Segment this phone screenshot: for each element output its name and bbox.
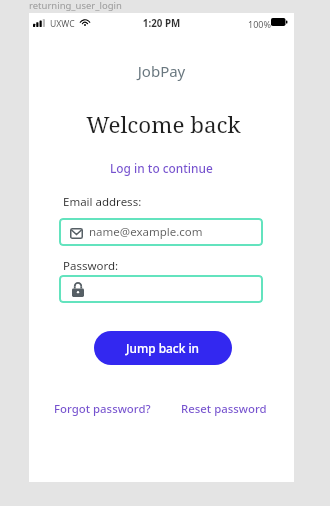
button[interactable]: Reset password bbox=[181, 401, 267, 417]
staticText: 1:20 PM bbox=[29, 17, 294, 30]
staticText: Welcome back bbox=[31, 109, 296, 140]
staticText: 100% bbox=[248, 18, 271, 30]
staticText: JobPay bbox=[29, 61, 294, 81]
staticText: Email address: bbox=[63, 194, 142, 210]
staticText: Jump back in bbox=[126, 340, 200, 356]
staticText: returning_user_login bbox=[29, 0, 122, 12]
staticText: name@example.com bbox=[89, 224, 203, 240]
staticText: Password: bbox=[63, 258, 119, 274]
button[interactable] bbox=[59, 275, 263, 303]
button[interactable]: Log in to continue bbox=[29, 159, 294, 177]
button[interactable]: Forgot password? bbox=[54, 401, 151, 417]
button[interactable]: name@example.com bbox=[59, 218, 263, 246]
staticText: Log in to continue bbox=[110, 160, 213, 176]
button[interactable]: Jump back in bbox=[94, 331, 232, 365]
staticText: UXWC bbox=[50, 18, 75, 30]
